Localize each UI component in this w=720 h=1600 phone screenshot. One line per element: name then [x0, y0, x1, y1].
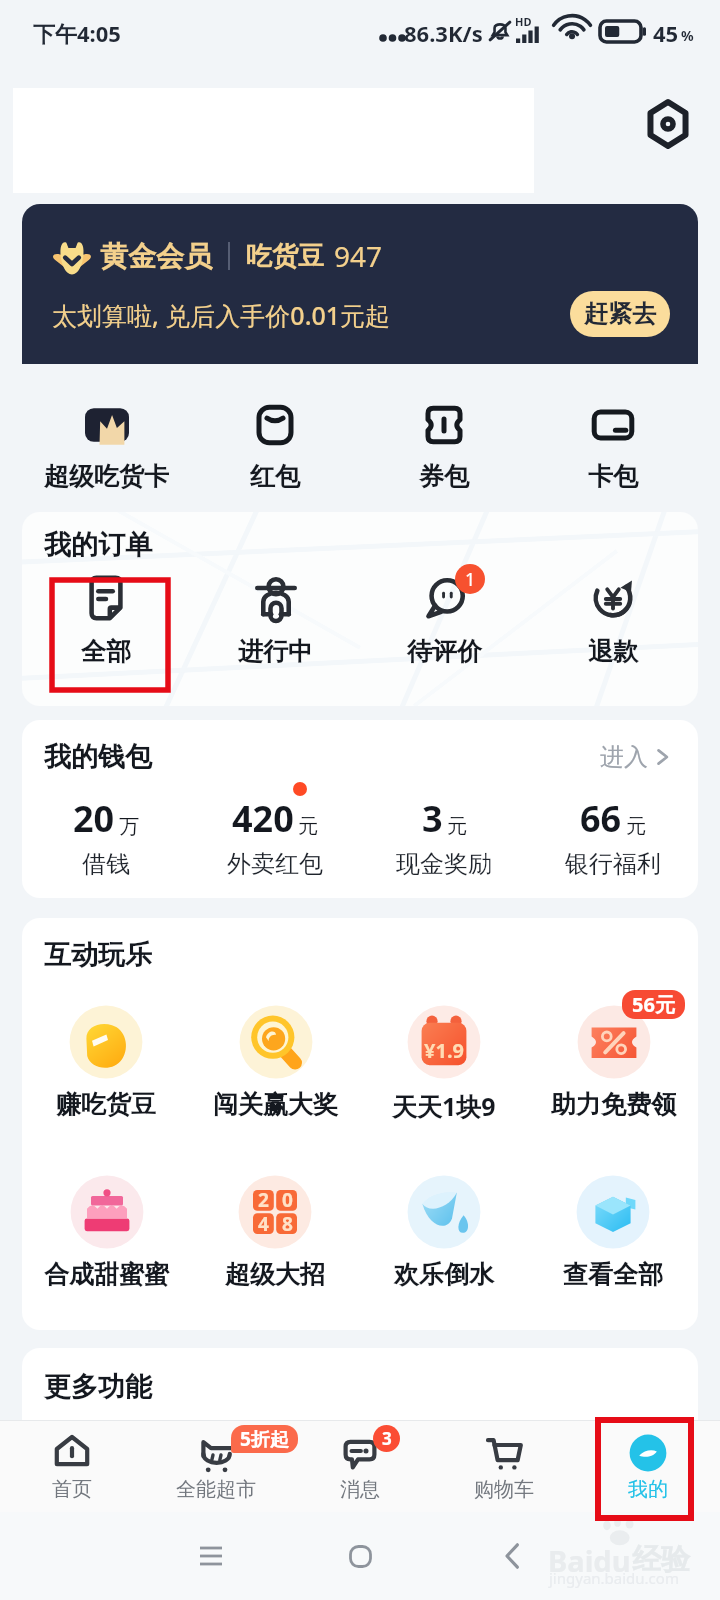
button[interactable]: 2	[190, 1172, 360, 1324]
staticText: 元	[447, 814, 467, 839]
staticText: 合成甜蜜蜜	[44, 1259, 169, 1290]
staticText: 借钱	[82, 849, 130, 879]
button[interactable]: 56元	[528, 1002, 698, 1154]
staticText: 元	[626, 814, 646, 839]
staticText: 20	[73, 794, 115, 843]
staticText: HD	[515, 14, 532, 29]
staticText: 86.3K/s	[404, 18, 483, 48]
staticText: 全部	[81, 636, 131, 667]
button[interactable]: 66	[528, 794, 698, 890]
button[interactable]: 卡包	[528, 364, 698, 504]
staticText: 3	[422, 794, 443, 843]
staticText: 助力免费领	[551, 1089, 676, 1120]
staticText: 45	[653, 18, 679, 48]
button[interactable]: 赚吃货豆	[22, 1002, 191, 1154]
button[interactable]: 退款	[528, 574, 698, 696]
staticText: 赶紧去	[584, 299, 656, 329]
button[interactable]: 红包	[190, 364, 360, 504]
staticText: ¥1.9	[424, 1037, 464, 1064]
staticText: 券包	[419, 461, 469, 492]
button[interactable]: Home	[335, 1531, 385, 1581]
button[interactable]: 超级吃货卡	[21, 364, 191, 504]
staticText: 银行福利	[565, 849, 661, 879]
button[interactable]: 3	[288, 1421, 432, 1512]
staticText: 购物车	[474, 1477, 534, 1502]
staticText: 下午4:05	[33, 18, 121, 48]
button[interactable]: 3	[359, 794, 529, 890]
staticText: 太划算啦, 兑后入手价0.01元起	[52, 298, 391, 332]
button[interactable]: 5折起	[144, 1421, 288, 1512]
staticText: 420	[232, 794, 294, 843]
staticText: %	[681, 26, 694, 45]
staticText: Baidu	[548, 1541, 631, 1580]
staticText: 8	[282, 1211, 293, 1237]
button[interactable]: 券包	[359, 364, 529, 504]
button[interactable]: 购物车	[432, 1421, 576, 1512]
button[interactable]: 合成甜蜜蜜	[22, 1172, 191, 1324]
button[interactable]: 我的	[576, 1421, 720, 1512]
staticText: 卡包	[588, 461, 638, 492]
staticText: 吃货豆	[246, 240, 324, 273]
staticText: 互动玩乐	[44, 938, 152, 972]
staticText: 黄金会员	[100, 239, 212, 274]
button[interactable]: 20	[22, 794, 191, 890]
staticText: 66	[580, 794, 622, 843]
staticText: 5折起	[240, 1426, 289, 1452]
staticText: 查看全部	[563, 1259, 663, 1290]
button[interactable]: 420	[190, 794, 360, 890]
staticText: 947	[334, 237, 383, 275]
staticText: 闯关赢大奖	[213, 1089, 338, 1120]
staticText: 元	[298, 814, 318, 839]
staticText: 1	[465, 567, 476, 592]
staticText: 更多功能	[44, 1370, 152, 1404]
staticText: 我的钱包	[44, 740, 152, 774]
button[interactable]: 1	[359, 574, 529, 696]
button[interactable]: Back	[487, 1531, 537, 1581]
staticText: 现金奖励	[396, 849, 492, 879]
button[interactable]: 进行中	[190, 574, 360, 696]
button[interactable]: 赶紧去	[570, 291, 670, 337]
button[interactable]: Recent apps	[186, 1531, 236, 1581]
button[interactable]: 全部	[22, 574, 191, 696]
staticText: 经验	[632, 1541, 690, 1578]
staticText: 我的订单	[44, 528, 152, 562]
staticText: 首页	[52, 1477, 92, 1502]
staticText: 天天1块9	[392, 1089, 496, 1123]
button[interactable]: 黄金会员	[22, 204, 698, 364]
staticText: 4	[258, 1211, 269, 1237]
button[interactable]: 闯关赢大奖	[190, 1002, 360, 1154]
button[interactable]: ¥1.9	[359, 1002, 529, 1154]
staticText: 赚吃货豆	[56, 1089, 156, 1120]
staticText: 进入	[600, 742, 648, 772]
staticText: 全能超市	[176, 1477, 256, 1502]
staticText: 超级吃货卡	[44, 461, 169, 492]
button[interactable]: 欢乐倒水	[359, 1172, 529, 1324]
button[interactable]: Settings	[638, 94, 698, 154]
staticText: 红包	[250, 461, 300, 492]
staticText: 万	[119, 814, 139, 839]
staticText: 退款	[588, 636, 638, 667]
staticText: 待评价	[407, 636, 482, 667]
staticText: jingyan.baidu.com	[549, 1568, 679, 1588]
staticText: 欢乐倒水	[394, 1259, 494, 1290]
staticText: 2	[258, 1187, 269, 1213]
staticText: 外卖红包	[227, 849, 323, 879]
staticText: 消息	[340, 1477, 380, 1502]
staticText: 我的	[628, 1477, 668, 1502]
staticText: 3	[382, 1427, 392, 1450]
button[interactable]: 首页	[0, 1421, 144, 1512]
staticText: 56元	[632, 991, 675, 1018]
staticText: 进行中	[238, 636, 313, 667]
button[interactable]: 查看全部	[528, 1172, 698, 1324]
staticText: 0	[282, 1187, 293, 1213]
button[interactable]: 进入	[600, 742, 670, 772]
staticText: 超级大招	[225, 1259, 325, 1290]
